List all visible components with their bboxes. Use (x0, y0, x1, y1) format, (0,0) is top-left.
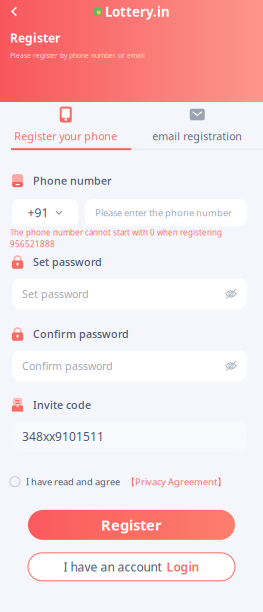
staticText: email registration (152, 129, 242, 143)
staticText: Set password (33, 255, 102, 269)
staticText: Please enter the phone number (95, 206, 232, 219)
button[interactable]: I have an account (28, 553, 235, 581)
staticText: Invite code (33, 398, 91, 412)
staticText: Set password (22, 287, 89, 301)
button[interactable]: +91 (12, 199, 78, 226)
button[interactable]: Back (0, 1, 26, 22)
staticText: I have an account (63, 559, 161, 575)
button[interactable]: Show password (225, 288, 237, 300)
button[interactable]: Register your phone (0, 102, 131, 148)
staticText: +91 (27, 205, 48, 221)
staticText: Register (101, 515, 162, 535)
button[interactable]: email registration (131, 102, 263, 148)
button[interactable]: Register (28, 510, 235, 540)
button[interactable]: Show password (225, 360, 237, 372)
staticText: 348xx9101511 (22, 428, 104, 444)
staticText: Register your phone (14, 129, 117, 143)
staticText: Register (10, 30, 60, 46)
staticText: Confirm password (33, 327, 129, 341)
staticText: 956521888 (10, 239, 55, 249)
staticText: I have read and agree (26, 475, 120, 488)
staticText: Lottery.in (105, 3, 170, 20)
staticText: Login (166, 559, 199, 575)
staticText: Please register by phone number or email (10, 51, 145, 60)
button[interactable]: I have read and agree (0, 451, 263, 492)
staticText: Phone number (33, 174, 112, 188)
staticText: 【Privacy Agreement】 (126, 475, 226, 488)
staticText: The phone number cannot start with 0 whe… (10, 227, 222, 238)
staticText: Confirm password (22, 359, 113, 373)
